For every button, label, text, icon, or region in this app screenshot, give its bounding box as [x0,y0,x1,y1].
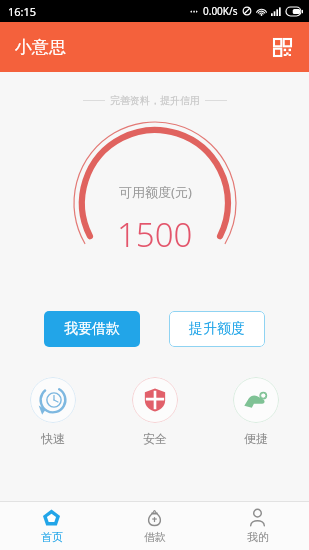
staticText: 0.00K/s [203,4,238,18]
button[interactable]: 安全 [132,377,178,446]
button[interactable]: 提升额度 [169,311,265,347]
staticText: 便捷 [244,431,268,446]
staticText: 借款 [144,530,166,544]
button[interactable]: 我的 [206,502,309,550]
button[interactable]: 便捷 [233,377,279,446]
staticText: 完善资料，提升信用 [110,94,200,107]
button[interactable]: 借款 [103,502,206,550]
button[interactable]: 快速 [30,377,76,446]
button[interactable]: 我要借款 [44,311,140,347]
staticText: 安全 [143,431,167,446]
staticText: 16:15 [8,4,37,19]
button[interactable]: Scan QR code [265,30,299,64]
staticText: ··· [190,4,199,18]
staticText: 小意思 [15,37,66,58]
button[interactable]: 首页 [0,502,103,550]
staticText: 1500 [117,212,193,257]
staticText: 提升额度 [189,320,245,338]
staticText: 首页 [41,530,63,544]
staticText: 我要借款 [64,320,120,338]
staticText: 快速 [41,431,65,446]
staticText: 我的 [247,530,269,544]
staticText: 可用额度(元) [119,183,192,201]
